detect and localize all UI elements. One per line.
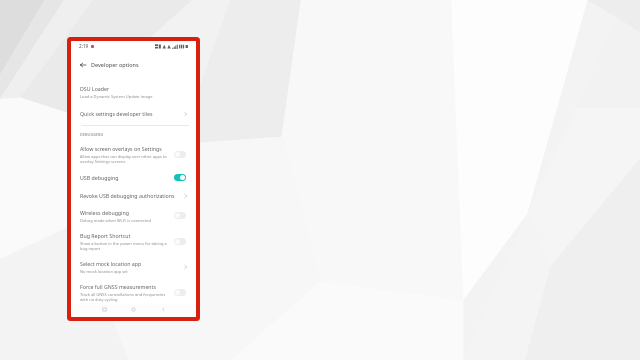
staticText: DSU Loader (80, 85, 110, 92)
button[interactable]: DSU Loader (71, 82, 196, 101)
button[interactable]: Toggle off (174, 212, 186, 219)
staticText: Developer options (91, 61, 139, 68)
staticText: Debug mode when Wi-Fi is connected (80, 218, 151, 223)
staticText: Wireless debugging (80, 209, 129, 216)
button[interactable]: Toggle off (174, 238, 186, 245)
staticText: Show a button in the power menu for taki… (80, 241, 167, 251)
button[interactable]: Bug Report Shortcut (71, 229, 196, 253)
button[interactable]: Revoke USB debugging authorizations (71, 189, 196, 201)
staticText: Allow screen overlays on Settings (80, 145, 162, 152)
button[interactable]: Recents (99, 304, 110, 315)
button[interactable]: Force full GNSS measurements (71, 280, 196, 304)
staticText: Revoke USB debugging authorizations (80, 192, 175, 199)
staticText: Force full GNSS measurements (80, 283, 156, 290)
button[interactable]: USB debugging (71, 171, 196, 183)
staticText: DEBUGGING (80, 132, 104, 137)
button[interactable]: Toggle on (174, 174, 186, 181)
button[interactable]: Back (158, 304, 169, 315)
button[interactable]: Toggle off (174, 151, 186, 158)
staticText: Allow apps that can display over other a… (80, 154, 167, 164)
staticText: Select mock location app (80, 260, 142, 267)
button[interactable]: Home (128, 304, 139, 315)
staticText: Track all GNSS constellations and freque… (80, 292, 166, 302)
staticText: Load a Dynamic System Update image (80, 94, 153, 99)
staticText: No mock location app set (80, 269, 128, 274)
staticText: Quick settings developer tiles (80, 110, 153, 117)
button[interactable]: Back (77, 59, 88, 70)
button[interactable]: Select mock location app (71, 257, 196, 276)
staticText: USB debugging (80, 174, 119, 181)
button[interactable]: Wireless debugging (71, 206, 196, 225)
button[interactable]: Allow screen overlays on Settings (71, 142, 196, 166)
button[interactable]: Toggle off (174, 289, 186, 296)
staticText: 2:19 (79, 43, 89, 49)
button[interactable]: Quick settings developer tiles (71, 107, 196, 119)
staticText: Bug Report Shortcut (80, 232, 131, 239)
